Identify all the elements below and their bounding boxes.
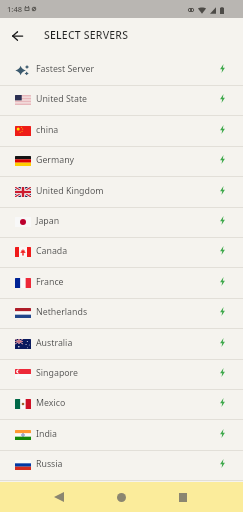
staticText: Netherlands	[36, 306, 88, 318]
staticText: Fastest Server	[36, 63, 95, 75]
button[interactable]: Australia	[0, 330, 243, 360]
button[interactable]: china	[0, 117, 243, 147]
staticText: United Kingdom	[36, 185, 104, 197]
staticText: Germany	[36, 154, 75, 166]
button[interactable]: Fastest Server	[0, 56, 243, 86]
button[interactable]: United State	[0, 86, 243, 116]
button[interactable]: United Kingdom	[0, 178, 243, 208]
staticText: Singapore	[36, 367, 79, 379]
button[interactable]: India	[0, 421, 243, 451]
staticText: Australia	[36, 337, 73, 349]
staticText: India	[36, 428, 58, 440]
staticText: 1:48	[7, 4, 23, 14]
button[interactable]: Recents	[168, 482, 198, 512]
staticText: Japan	[36, 215, 60, 227]
staticText: Canada	[36, 245, 68, 257]
staticText: SELECT SERVERS	[44, 28, 129, 42]
button[interactable]: Netherlands	[0, 299, 243, 329]
button[interactable]: Singapore	[0, 360, 243, 390]
staticText: France	[36, 276, 64, 288]
button[interactable]: Home	[106, 482, 136, 512]
staticText: china	[36, 124, 59, 136]
button[interactable]: Back	[44, 482, 74, 512]
button[interactable]: Russia	[0, 451, 243, 481]
staticText: Mexico	[36, 397, 66, 409]
button[interactable]: Mexico	[0, 390, 243, 420]
button[interactable]: Japan	[0, 208, 243, 238]
button[interactable]: Back	[5, 23, 30, 48]
button[interactable]: France	[0, 269, 243, 299]
button[interactable]: Germany	[0, 147, 243, 177]
button[interactable]: Canada	[0, 238, 243, 268]
staticText: United State	[36, 93, 88, 105]
staticText: Russia	[36, 458, 63, 470]
